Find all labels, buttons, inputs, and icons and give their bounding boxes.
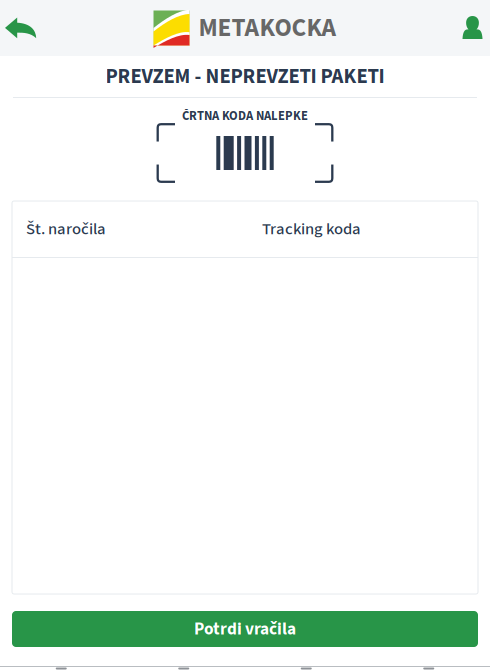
- staticText: Potrdi vračila: [194, 617, 296, 641]
- button[interactable]: Tab: [367, 667, 490, 670]
- button[interactable]: Tab: [245, 667, 367, 670]
- button[interactable]: Potrdi vračila: [12, 611, 478, 647]
- button[interactable]: Account: [456, 5, 490, 51]
- staticText: Št. naročila: [26, 217, 106, 241]
- button[interactable]: Tab: [122, 667, 245, 670]
- button[interactable]: Tab: [0, 667, 122, 670]
- staticText: PREVZEM - NEPREVZETI PAKETI: [105, 62, 384, 91]
- staticText: METAKOCKA: [198, 10, 336, 46]
- staticText: Tracking koda: [262, 217, 361, 241]
- button[interactable]: Back: [0, 5, 42, 51]
- staticText: ČRTNA KODA NALEPKE: [182, 107, 308, 125]
